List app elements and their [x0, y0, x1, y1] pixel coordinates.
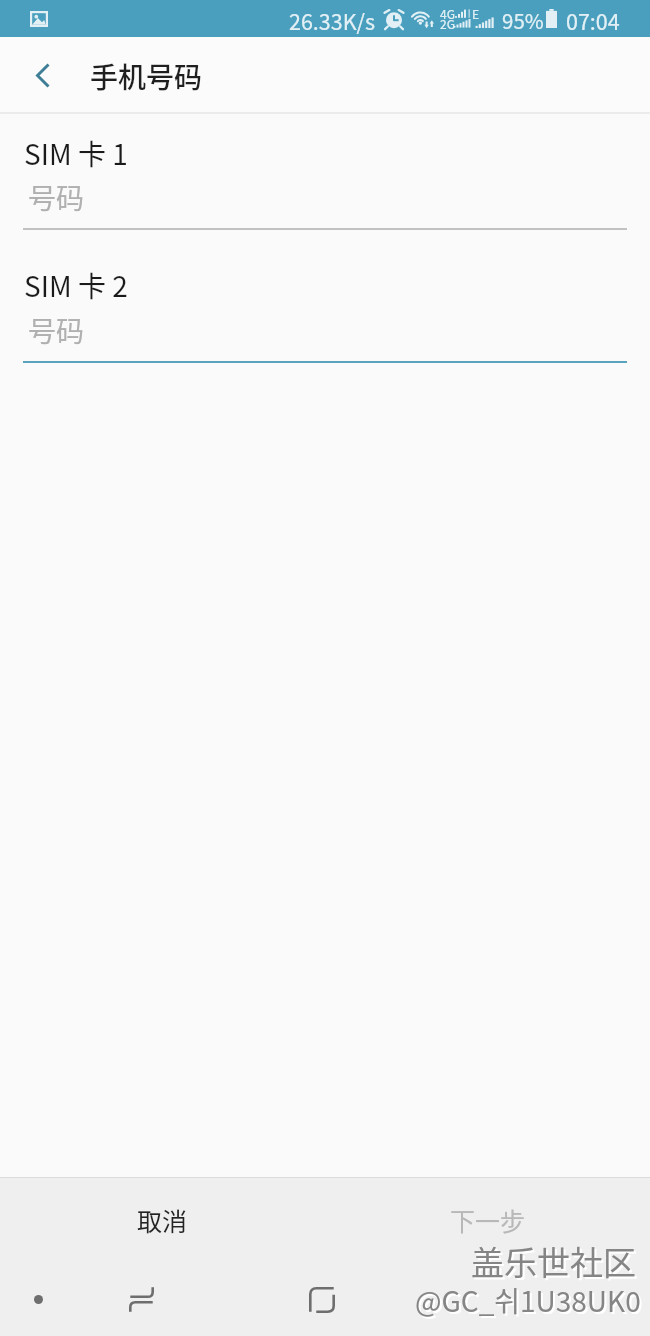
button[interactable]: Home	[14, 1275, 62, 1323]
staticText: 盖乐世社区	[473, 1239, 638, 1287]
staticText: SIM 卡 1	[24, 133, 128, 174]
staticText: 盖乐世社区	[471, 1237, 636, 1285]
staticText: 下一步	[450, 1202, 526, 1238]
staticText: 2G	[440, 15, 455, 32]
staticText: 手机号码	[90, 56, 203, 97]
staticText: E	[472, 5, 480, 22]
staticText: 4G	[440, 5, 455, 22]
button[interactable]: Recent apps	[117, 1275, 165, 1323]
button[interactable]: Back	[298, 1276, 346, 1324]
button[interactable]: 下一步	[325, 1178, 650, 1262]
staticText: 26.33K/s	[289, 5, 376, 36]
staticText: SIM 卡 2	[24, 265, 128, 306]
staticText: @GC_쉬1U38UK0	[417, 1282, 643, 1323]
staticText: 95%	[502, 5, 544, 35]
button[interactable]: 取消	[0, 1178, 325, 1262]
staticText: 号码	[28, 177, 85, 218]
button[interactable]: 号码	[23, 300, 627, 363]
staticText: @GC_쉬1U38UK0	[415, 1280, 641, 1321]
staticText: 07:04	[566, 5, 620, 36]
staticText: 取消	[137, 1202, 188, 1238]
staticText: 号码	[28, 310, 85, 351]
button[interactable]: 号码	[23, 167, 627, 230]
button[interactable]: Back	[19, 51, 67, 99]
